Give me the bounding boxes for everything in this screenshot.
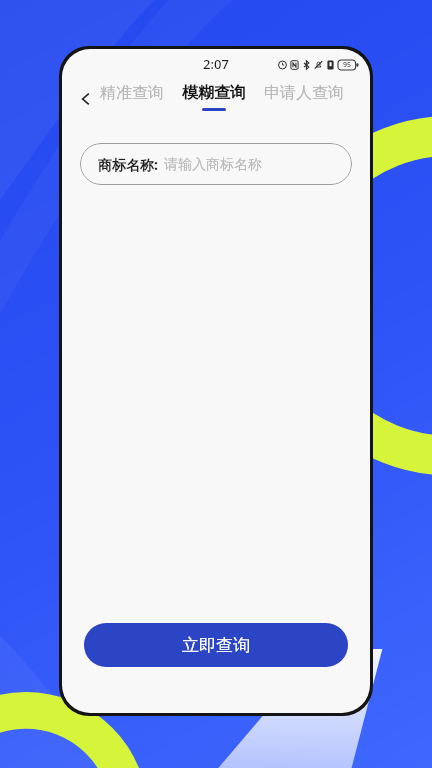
staticText: 2:07 [203,55,229,73]
staticText: 95 [343,60,352,70]
button[interactable]: 模糊查询 [180,83,248,111]
staticText: 请输入商标名称 [164,156,262,174]
button[interactable]: Back [72,85,100,113]
staticText: 立即查询 [182,635,250,656]
button[interactable]: 立即查询 [84,623,348,667]
staticText: 申请人查询 [264,83,344,103]
button[interactable]: 申请人查询 [262,83,346,111]
staticText: 商标名称: [98,155,158,174]
staticText: 精准查询 [100,83,164,103]
button[interactable]: 商标名称: [80,143,352,185]
staticText: 模糊查询 [182,83,246,103]
button[interactable]: 精准查询 [98,83,166,111]
